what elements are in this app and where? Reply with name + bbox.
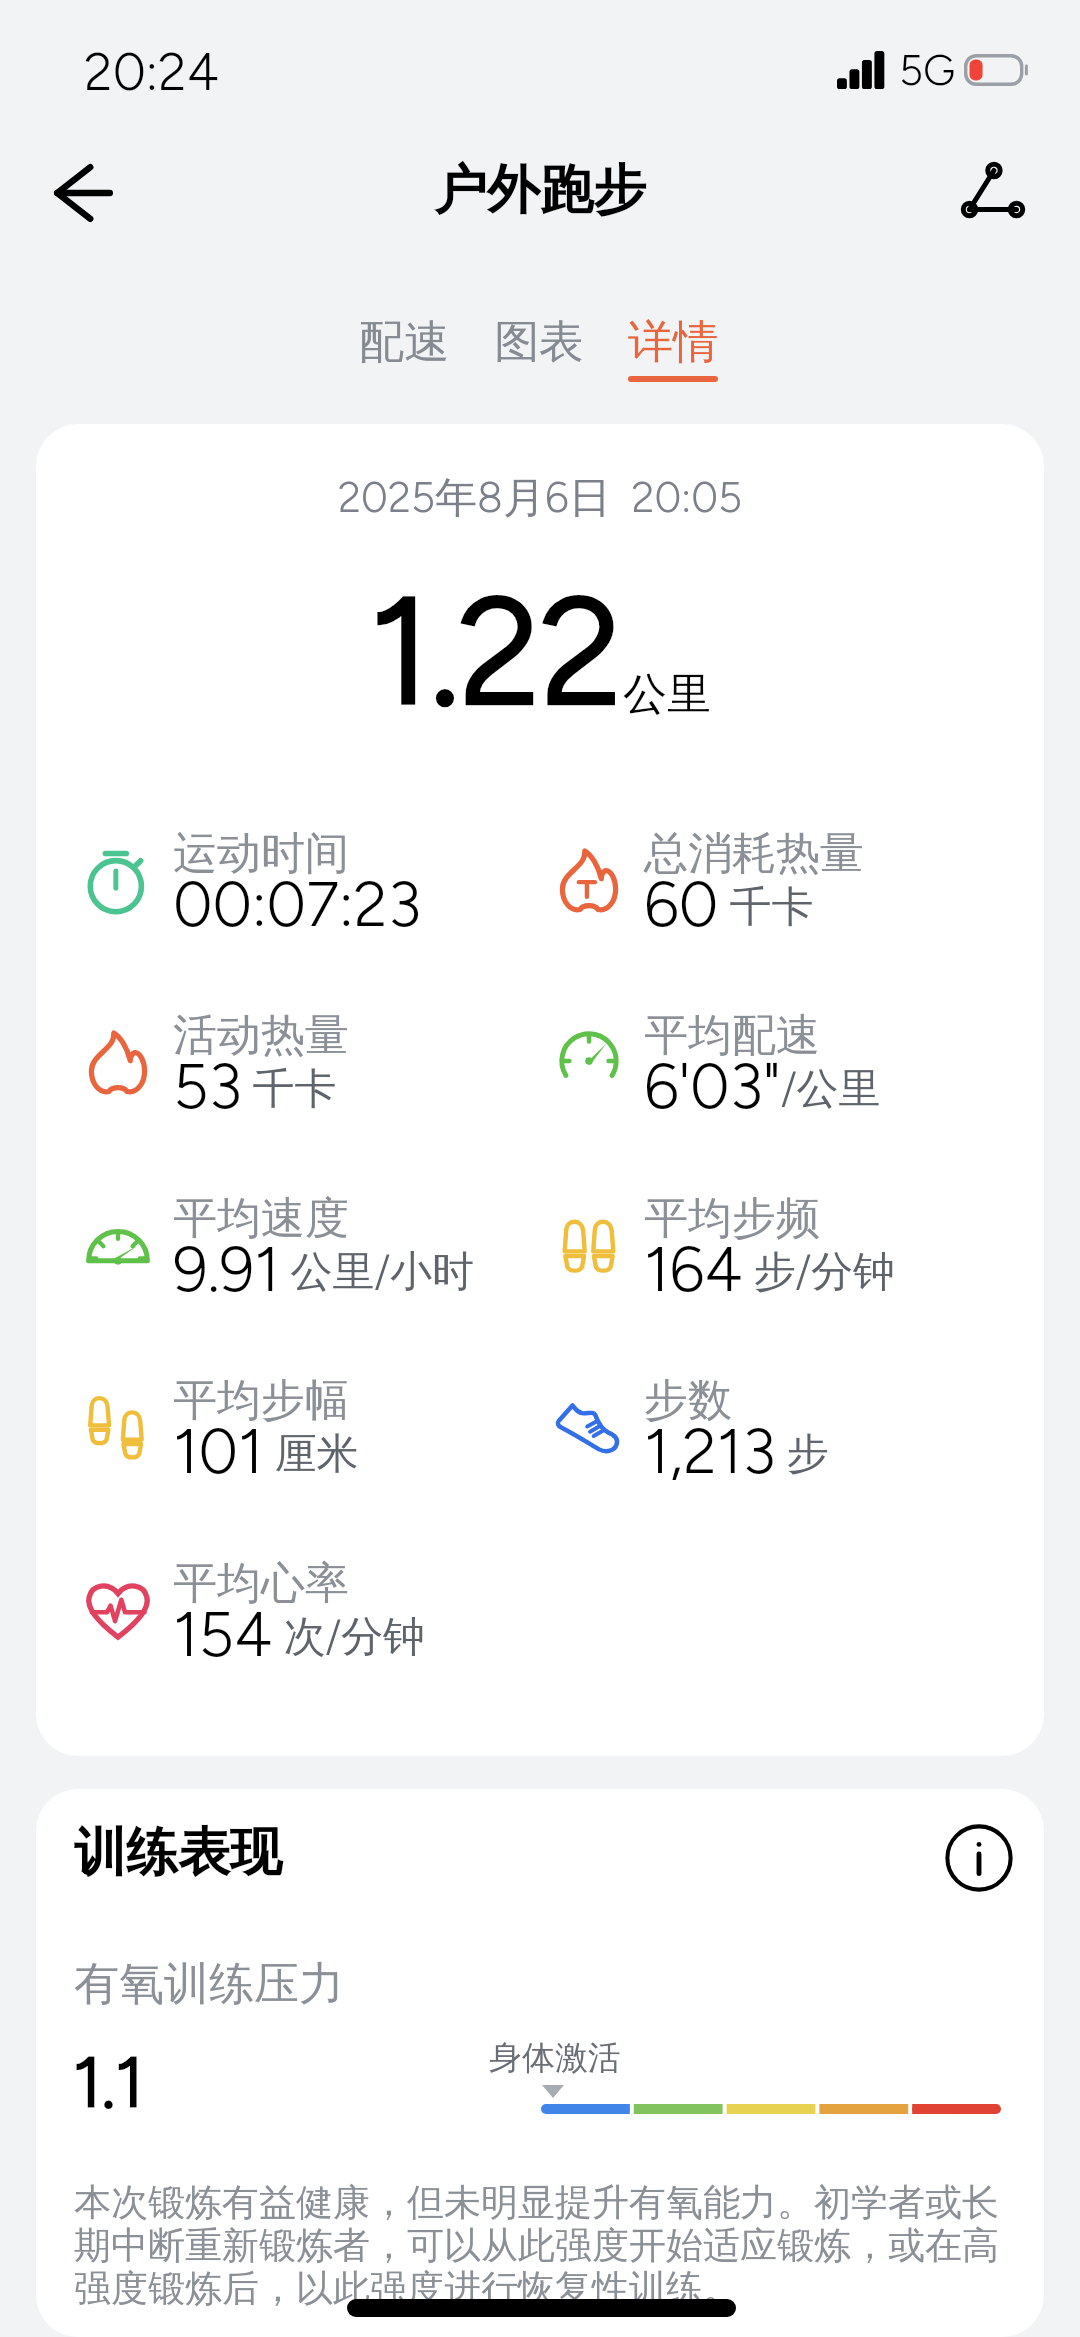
staticText: 有氧训练压力: [74, 1956, 344, 2013]
staticText: 次/分钟: [273, 1611, 426, 1664]
staticText: 活动热量: [173, 1008, 349, 1063]
staticText: 运动时间: [173, 826, 349, 881]
staticText: 平均配速: [644, 1008, 820, 1063]
staticText: 平均步幅: [173, 1373, 349, 1428]
button[interactable]: Back: [18, 128, 148, 258]
staticText: 公里/小时: [280, 1246, 475, 1299]
staticText: 1,213: [644, 1414, 776, 1488]
staticText: 身体激活: [489, 2037, 621, 2079]
staticText: 20:24: [84, 41, 219, 103]
staticText: 53: [173, 1049, 242, 1123]
staticText: /公里: [781, 1063, 881, 1116]
button[interactable]: Share: [928, 125, 1058, 255]
button[interactable]: 配速: [342, 314, 466, 382]
button[interactable]: Info: [934, 1813, 1024, 1903]
staticText: 5G: [899, 45, 956, 95]
button[interactable]: 图表: [477, 314, 601, 382]
staticText: 步/分钟: [743, 1246, 896, 1299]
staticText: 00:07:23: [173, 867, 422, 941]
staticText: 平均步频: [644, 1191, 820, 1246]
staticText: 详情: [628, 314, 718, 371]
staticText: 154: [173, 1597, 273, 1671]
staticText: 公里: [623, 667, 711, 722]
staticText: 千卡: [719, 881, 814, 934]
staticText: 2025年8月6日 20:05: [36, 472, 1044, 525]
staticText: 60: [644, 867, 719, 941]
staticText: 配速: [359, 314, 449, 371]
staticText: 厘米: [264, 1428, 359, 1481]
staticText: 1.1: [73, 2040, 144, 2124]
staticText: 101: [173, 1414, 264, 1488]
staticText: 步: [776, 1428, 829, 1481]
staticText: 千卡: [242, 1063, 337, 1116]
staticText: 164: [644, 1232, 743, 1306]
button[interactable]: 详情: [611, 314, 735, 382]
staticText: 1.22: [370, 562, 623, 740]
staticText: 训练表现: [74, 1820, 282, 1886]
staticText: 6'03": [644, 1049, 781, 1123]
staticText: 步数: [644, 1373, 732, 1428]
staticText: 户外跑步: [434, 157, 646, 224]
staticText: 本次锻炼有益健康，但未明显提升有氧能力。初学者或长期中断重新锻炼者，可以从此强度…: [74, 2179, 1014, 2312]
staticText: 图表: [494, 314, 584, 371]
staticText: 9.91: [173, 1232, 280, 1306]
staticText: 平均心率: [173, 1556, 349, 1611]
staticText: 总消耗热量: [644, 826, 864, 881]
staticText: 平均速度: [173, 1191, 349, 1246]
